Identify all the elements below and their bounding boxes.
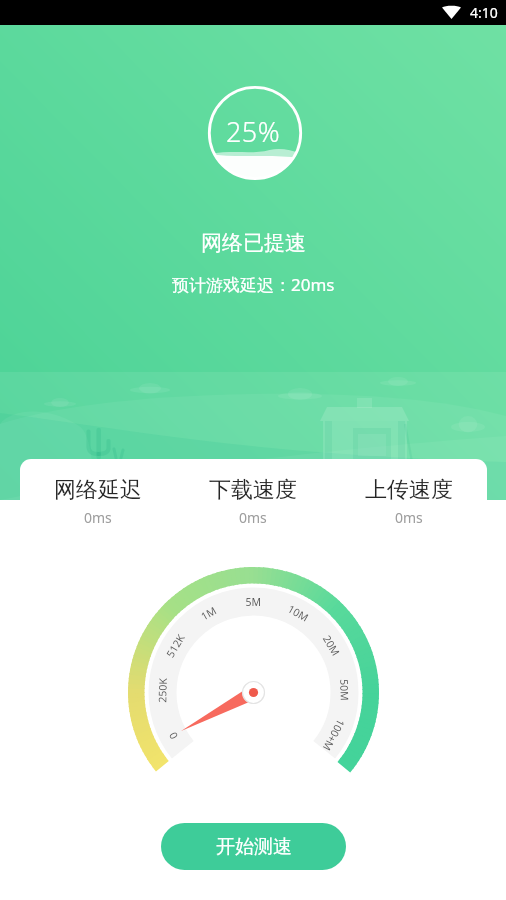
staticText: 0ms (239, 508, 267, 527)
staticText: 上传速度 (365, 476, 453, 504)
staticText: 0ms (395, 508, 423, 527)
staticText: 4:10 (470, 3, 498, 22)
staticText: 网络已提速 (201, 230, 306, 256)
staticText: 预计游戏延迟：20ms (172, 273, 335, 296)
button[interactable]: 下载速度 (175, 476, 331, 527)
staticText: 网络延迟 (54, 476, 142, 504)
button[interactable]: 开始测速 (161, 823, 346, 870)
button[interactable]: 网络延迟 (20, 476, 175, 527)
staticText: 0ms (84, 508, 112, 527)
staticText: 开始测速 (216, 835, 292, 859)
button[interactable]: 上传速度 (331, 476, 487, 527)
staticText: 25% (226, 113, 280, 150)
staticText: 下载速度 (209, 476, 297, 504)
